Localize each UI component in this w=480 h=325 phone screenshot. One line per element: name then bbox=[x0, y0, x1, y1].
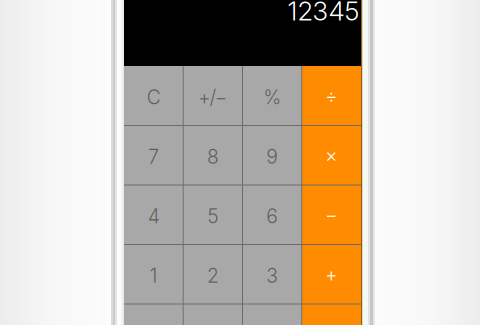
staticText: 12345 bbox=[287, 0, 359, 27]
button[interactable]: 6 bbox=[242, 185, 302, 244]
button[interactable]: × bbox=[302, 125, 361, 185]
staticText: 6 bbox=[266, 205, 278, 228]
button[interactable]: +/− bbox=[183, 66, 242, 125]
button[interactable]: = bbox=[302, 304, 361, 325]
button[interactable]: − bbox=[302, 185, 361, 244]
staticText: × bbox=[325, 144, 338, 167]
button[interactable]: ÷ bbox=[302, 66, 361, 125]
staticText: 9 bbox=[266, 145, 278, 168]
button[interactable]: 1 bbox=[124, 244, 183, 304]
staticText: C bbox=[147, 86, 161, 109]
button[interactable]: % bbox=[242, 66, 302, 125]
button[interactable]: 8 bbox=[183, 125, 242, 185]
staticText: + bbox=[325, 263, 338, 286]
staticText: 5 bbox=[207, 205, 218, 228]
staticText: % bbox=[263, 86, 281, 109]
staticText: 3 bbox=[266, 264, 278, 287]
staticText: 1 bbox=[150, 264, 158, 287]
staticText: − bbox=[325, 203, 338, 226]
button[interactable]: + bbox=[302, 244, 361, 304]
button[interactable]: 0 bbox=[124, 304, 183, 325]
button[interactable] bbox=[242, 304, 302, 325]
button[interactable]: 5 bbox=[183, 185, 242, 244]
button[interactable]: 7 bbox=[124, 125, 183, 185]
staticText: +/− bbox=[198, 86, 228, 109]
staticText: 4 bbox=[148, 205, 160, 228]
button[interactable]: . bbox=[183, 304, 242, 325]
button[interactable]: 2 bbox=[183, 244, 242, 304]
staticText: ÷ bbox=[325, 84, 338, 107]
staticText: 7 bbox=[148, 145, 159, 168]
button[interactable]: C bbox=[124, 66, 183, 125]
button[interactable]: 9 bbox=[242, 125, 302, 185]
button[interactable]: 3 bbox=[242, 244, 302, 304]
staticText: 2 bbox=[207, 264, 219, 287]
button[interactable]: 4 bbox=[124, 185, 183, 244]
staticText: 8 bbox=[207, 145, 219, 168]
